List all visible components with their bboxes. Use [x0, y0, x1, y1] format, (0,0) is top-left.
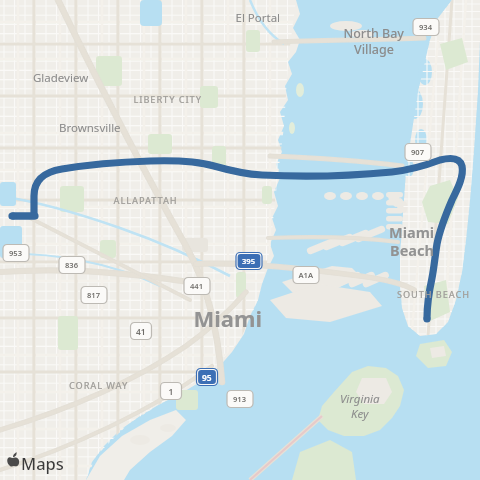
button[interactable]: Map of Miami with transit route — [0, 0, 480, 480]
